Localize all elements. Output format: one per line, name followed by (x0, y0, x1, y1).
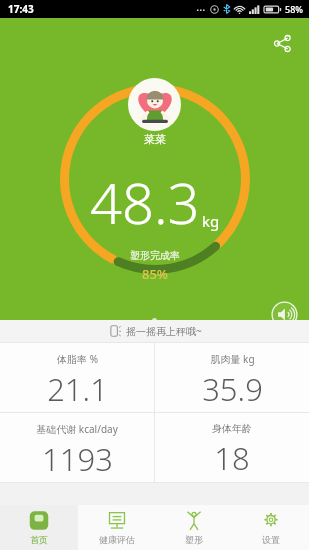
button[interactable]: 肌肉量 kg (155, 343, 309, 412)
staticText: 设置 (262, 534, 280, 545)
button[interactable]: Profile (128, 78, 181, 131)
staticText: 塑形完成率 (130, 249, 180, 262)
staticText: 健康评估 (99, 534, 135, 545)
staticText: 首页 (30, 534, 48, 545)
button[interactable]: 体脂率 % (0, 343, 154, 412)
button[interactable]: 设置 (232, 505, 309, 550)
staticText: 塑形 (185, 534, 203, 545)
staticText: 肌肉量 kg (210, 352, 255, 366)
staticText: 身体年龄 (212, 422, 252, 435)
button[interactable]: 身体年龄 (155, 413, 309, 482)
staticText: 基础代谢 kcal/day (36, 422, 118, 436)
staticText: 85% (142, 265, 168, 283)
staticText: 摇一摇再上秤哦~ (126, 324, 202, 338)
button[interactable]: 塑形 (155, 505, 232, 550)
staticText: 体脂率 % (57, 352, 98, 366)
staticText: 菜菜 (144, 132, 166, 146)
button[interactable]: 首页 (0, 505, 78, 550)
button[interactable]: 基础代谢 kcal/day (0, 413, 154, 482)
staticText: 17:43 (8, 2, 34, 16)
staticText: kg (202, 211, 220, 231)
staticText: 58% (285, 3, 303, 15)
staticText: 35.9 (202, 368, 263, 410)
button[interactable]: 摇一摇再上秤哦~ (0, 320, 309, 342)
button[interactable]: 健康评估 (78, 505, 155, 550)
staticText: 1193 (42, 438, 113, 480)
staticText: 48.3 (90, 164, 200, 240)
button[interactable]: Share (265, 26, 299, 60)
button[interactable]: Sound (269, 299, 299, 329)
staticText: 21.1 (47, 368, 108, 410)
staticText: 18 (214, 437, 250, 479)
